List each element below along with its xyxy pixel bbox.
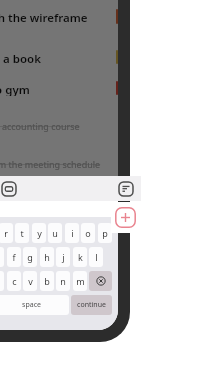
staticText: i [71, 227, 74, 239]
button[interactable]: x [0, 271, 4, 291]
staticText: l [95, 251, 98, 263]
staticText: m [76, 275, 85, 287]
staticText: h [44, 251, 50, 263]
button[interactable]: Confirm the meeting schedule [0, 158, 118, 172]
button[interactable]: n [56, 271, 70, 291]
button[interactable]: i [65, 223, 79, 243]
staticText: v [28, 275, 33, 287]
staticText: r [4, 227, 8, 239]
button[interactable]: Go to gym [0, 82, 118, 96]
button[interactable]: Finish the wireframe [0, 10, 118, 32]
button[interactable]: d [0, 247, 4, 267]
button[interactable]: h [40, 247, 54, 267]
button[interactable]: o [81, 223, 95, 243]
staticText: k [78, 251, 83, 263]
button[interactable]: r [0, 223, 13, 243]
button[interactable]: Backspace [89, 271, 112, 291]
button[interactable]: y [32, 223, 46, 243]
staticText: Go to gym [0, 82, 30, 96]
button[interactable]: t [15, 223, 29, 243]
staticText: n [60, 275, 66, 287]
button[interactable]: Start a accounting course [0, 120, 118, 134]
button[interactable]: v [23, 271, 37, 291]
staticText: continue [77, 300, 106, 310]
staticText: p [102, 227, 108, 239]
button[interactable]: l [89, 247, 103, 267]
staticText: Read a book [0, 51, 41, 65]
staticText: Confirm the meeting schedule [0, 158, 101, 170]
button[interactable]: g [23, 247, 37, 267]
staticText: Start a accounting course [0, 120, 80, 132]
staticText: j [62, 251, 65, 263]
button[interactable]: p [98, 223, 112, 243]
button[interactable]: f [7, 247, 21, 267]
button[interactable]: space [0, 295, 69, 315]
button[interactable]: u [48, 223, 62, 243]
staticText: Finish the wireframe [0, 10, 88, 26]
staticText: g [27, 251, 33, 263]
staticText: t [20, 227, 24, 239]
button[interactable]: j [56, 247, 70, 267]
staticText: space [22, 300, 41, 310]
button[interactable]: m [73, 271, 87, 291]
button[interactable]: continue [71, 295, 112, 315]
staticText: y [37, 227, 42, 239]
button[interactable]: k [73, 247, 87, 267]
button[interactable]: Attach [1, 181, 17, 197]
staticText: u [52, 227, 58, 239]
button[interactable]: Read a book [0, 51, 118, 65]
button[interactable]: Add item [115, 207, 136, 228]
button[interactable]: Notes [118, 181, 134, 197]
staticText: f [12, 251, 16, 263]
staticText: c [12, 275, 17, 287]
button[interactable]: b [40, 271, 54, 291]
staticText: o [85, 227, 91, 239]
staticText: b [44, 275, 50, 287]
button[interactable]: c [7, 271, 21, 291]
